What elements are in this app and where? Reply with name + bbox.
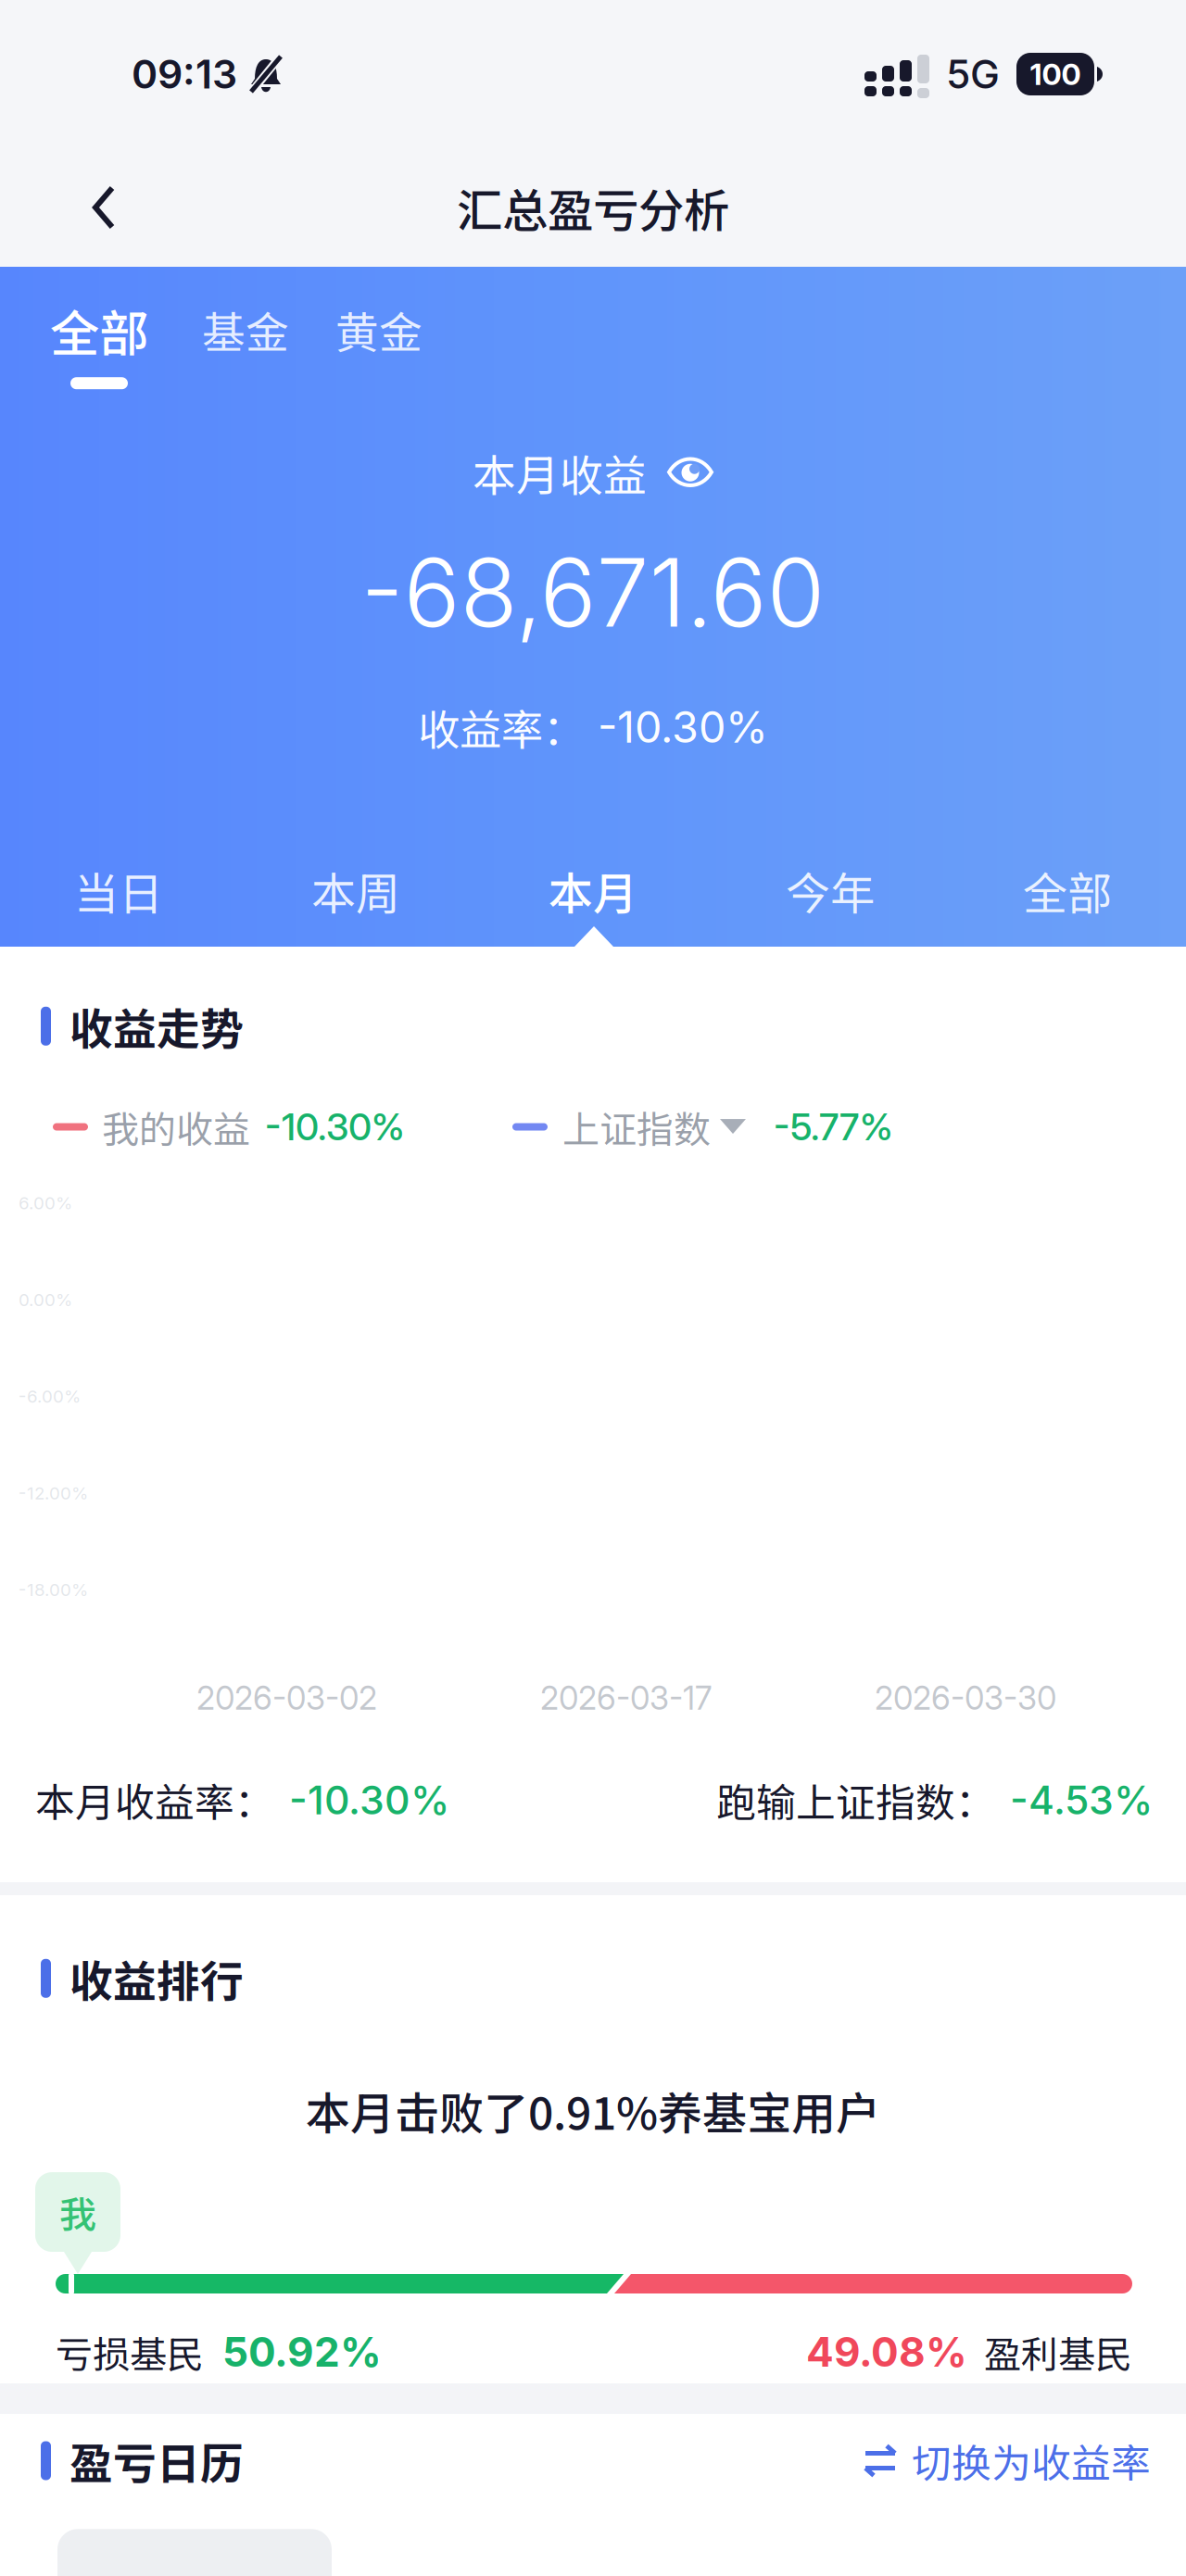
staticText: 亏损基民	[56, 2325, 204, 2379]
staticText: 跑输上证指数：	[716, 1771, 995, 1828]
staticText: 切换为收益率	[912, 2432, 1151, 2489]
staticText: 全部	[50, 295, 148, 366]
staticText: 盈利基民	[967, 2325, 1132, 2379]
staticText: -12.00%	[19, 1483, 88, 1504]
staticText: -10.30%	[289, 1776, 449, 1824]
staticText: 黄金	[335, 298, 423, 361]
staticText: 收益排行	[69, 1947, 244, 2010]
staticText: 0.00%	[19, 1289, 72, 1310]
staticText: 5G	[946, 50, 1000, 98]
staticText: 09:13	[132, 50, 237, 98]
staticText: 今年	[786, 858, 875, 923]
staticText: -6.00%	[19, 1386, 81, 1407]
staticText: 收益走势	[69, 995, 244, 1057]
staticText: 我的收益	[102, 1100, 250, 1154]
staticText: 2026-03-17	[540, 1679, 712, 1718]
button[interactable]: 黄金	[335, 295, 423, 361]
button[interactable]: 本月	[474, 843, 712, 937]
staticText: 2026-03-02	[196, 1679, 377, 1718]
staticText: -10.30%	[598, 701, 768, 753]
staticText: 本月	[549, 858, 637, 923]
staticText: 2026-03-30	[875, 1679, 1056, 1718]
button[interactable]: 基金	[202, 295, 289, 361]
staticText: -18.00%	[19, 1579, 88, 1600]
staticText: 50.92%	[204, 2327, 382, 2376]
staticText: 6.00%	[19, 1193, 72, 1214]
staticText: 本月收益	[473, 441, 647, 504]
staticText: -5.77%	[774, 1104, 893, 1149]
button[interactable]: 切换为收益率	[864, 2432, 1186, 2489]
button[interactable]: 本周	[237, 843, 474, 937]
staticText: 本周	[311, 858, 400, 923]
staticText: -68,671.60	[361, 536, 825, 649]
button[interactable]: 今年	[712, 843, 949, 937]
staticText: 基金	[202, 298, 289, 361]
staticText: 当日	[74, 858, 163, 923]
staticText: 本月击败了0.91%养基宝用户	[306, 2078, 880, 2143]
button[interactable]: 全部	[50, 295, 148, 389]
staticText: 全部	[1023, 858, 1112, 923]
staticText: 100	[1030, 56, 1081, 92]
staticText: 汇总盈亏分析	[457, 174, 729, 241]
button[interactable]: 全部	[949, 843, 1186, 937]
staticText: 上证指数	[562, 1100, 711, 1154]
staticText: 收益率：	[418, 696, 585, 757]
staticText: -4.53%	[1010, 1776, 1153, 1824]
button[interactable]: Back	[48, 159, 159, 256]
staticText: 我	[59, 2185, 96, 2239]
button[interactable]: 当日	[0, 843, 237, 937]
staticText: 盈亏日历	[69, 2429, 244, 2492]
staticText: 49.08%	[806, 2327, 967, 2376]
staticText: 本月收益率：	[35, 1771, 274, 1828]
staticText: -10.30%	[265, 1104, 405, 1149]
